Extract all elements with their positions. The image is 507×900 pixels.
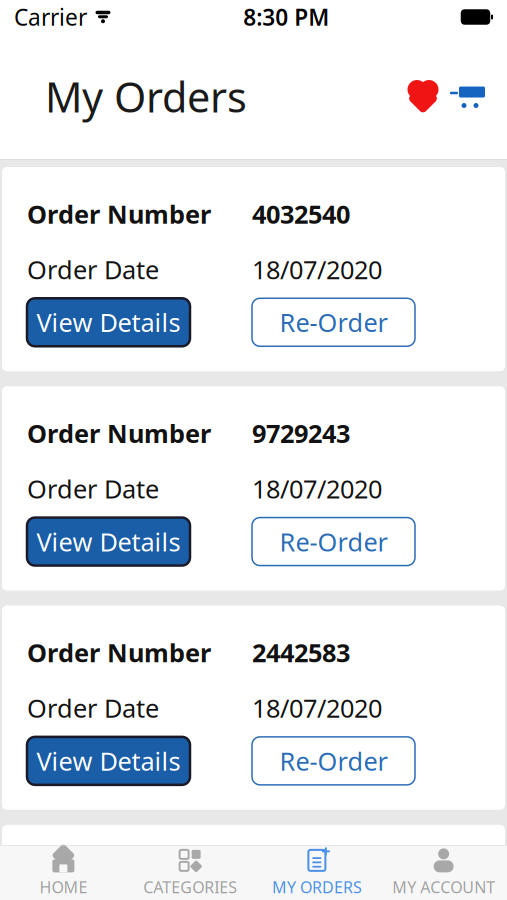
staticText: CATEGORIES <box>143 876 237 898</box>
staticText: 9229999 <box>252 855 350 888</box>
staticText: 8:30 PM <box>243 2 329 32</box>
button[interactable]: MY ACCOUNT <box>380 845 507 900</box>
staticText: 4032540 <box>252 197 350 231</box>
staticText: Re-Order <box>279 744 387 778</box>
staticText: Re-Order <box>279 525 387 558</box>
staticText: MY ACCOUNT <box>392 876 495 898</box>
staticText: 18/07/2020 <box>252 472 382 505</box>
staticText: Order Number <box>27 197 211 231</box>
staticText: Carrier <box>14 2 87 32</box>
staticText: Order Number <box>27 855 211 888</box>
button[interactable]: View Details <box>27 737 190 785</box>
staticText: 18/07/2020 <box>252 253 382 286</box>
staticText: Order Date <box>27 253 159 286</box>
staticText: MY ORDERS <box>272 876 362 898</box>
staticText: My Orders <box>45 69 247 124</box>
button[interactable]: Cart <box>445 74 489 118</box>
button[interactable]: CATEGORIES <box>127 845 254 900</box>
staticText: Re-Order <box>279 305 387 339</box>
button[interactable]: Re-Order <box>252 298 415 346</box>
staticText: Order Date <box>27 691 159 725</box>
button[interactable]: Re-Order <box>252 518 415 566</box>
staticText: 9729243 <box>252 416 350 450</box>
staticText: Order Number <box>27 416 211 450</box>
staticText: 18/07/2020 <box>252 691 382 725</box>
staticText: HOME <box>39 876 87 898</box>
staticText: Order Number <box>27 636 211 669</box>
button[interactable]: Re-Order <box>252 737 415 785</box>
button[interactable]: View Details <box>27 518 190 566</box>
button[interactable]: Favorites <box>401 74 445 118</box>
staticText: View Details <box>36 305 180 339</box>
staticText: 2442583 <box>252 636 350 669</box>
staticText: Order Date <box>27 472 159 505</box>
button[interactable]: View Details <box>27 298 190 346</box>
button[interactable]: MY ORDERS <box>253 845 380 900</box>
staticText: View Details <box>36 744 180 778</box>
staticText: View Details <box>36 525 180 558</box>
button[interactable]: HOME <box>0 845 127 900</box>
